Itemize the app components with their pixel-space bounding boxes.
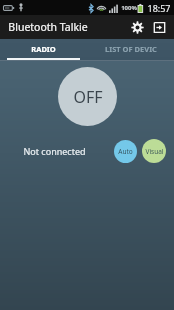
button[interactable]: Auto: [114, 140, 137, 163]
staticText: OFF: [73, 86, 103, 108]
staticText: RADIO: [31, 44, 56, 54]
staticText: 100%: [121, 4, 137, 12]
button[interactable]: Settings: [126, 15, 148, 39]
button[interactable]: OFF: [58, 67, 117, 126]
button[interactable]: Exit: [148, 15, 170, 39]
button[interactable]: LIST OF DEVIC: [87, 39, 174, 60]
button[interactable]: RADIO: [0, 39, 87, 60]
staticText: Visual: [145, 147, 164, 156]
staticText: Bluetooth Talkie: [8, 20, 88, 34]
staticText: LIST OF DEVIC: [105, 44, 157, 54]
staticText: Auto: [118, 147, 133, 156]
button[interactable]: Visual: [142, 139, 166, 163]
staticText: Not connected: [23, 145, 86, 157]
staticText: 18:57: [147, 2, 171, 14]
